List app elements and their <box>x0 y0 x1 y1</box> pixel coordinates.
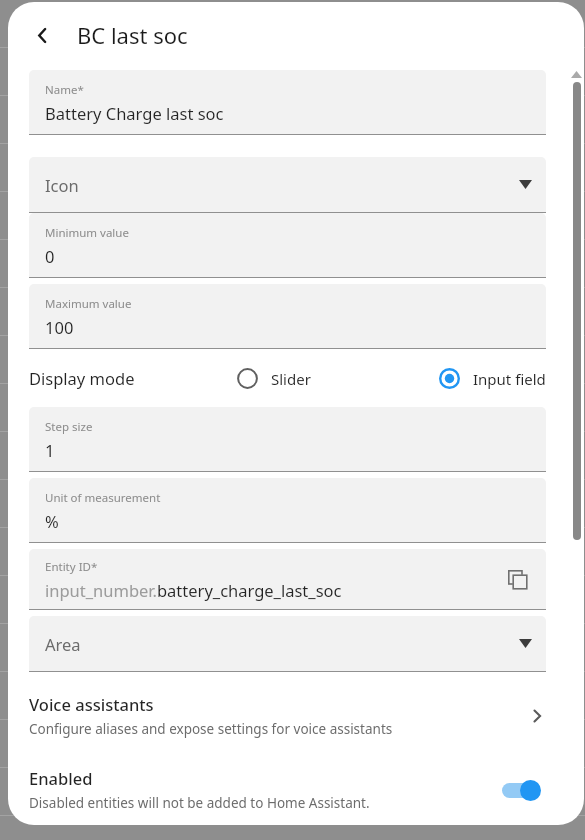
staticText: 0 <box>45 245 55 267</box>
button[interactable]: Back <box>20 13 64 57</box>
staticText: Name* <box>45 82 84 98</box>
button[interactable]: Maximum value <box>29 284 546 348</box>
staticText: Slider <box>271 369 311 389</box>
staticText: Step size <box>45 419 93 435</box>
staticText: Entity ID* <box>45 559 98 575</box>
staticText: 1 <box>45 439 55 461</box>
staticText: Configure aliases and expose settings fo… <box>29 720 393 738</box>
staticText: Battery Charge last soc <box>45 102 224 124</box>
staticText: Input field <box>473 369 546 389</box>
staticText: input_number.battery_charge_last_soc <box>45 579 342 601</box>
button[interactable]: Slider <box>237 368 311 389</box>
staticText: BC last soc <box>77 20 188 50</box>
staticText: Unit of measurement <box>45 490 161 506</box>
staticText: Icon <box>45 174 79 196</box>
staticText: Maximum value <box>45 296 132 312</box>
button[interactable]: Input field <box>439 368 546 389</box>
button[interactable]: Icon <box>29 157 546 212</box>
button[interactable]: Entity ID* <box>29 549 546 609</box>
button[interactable]: Copy entity ID <box>500 562 536 598</box>
button[interactable]: Name* <box>29 70 546 134</box>
staticText: Minimum value <box>45 225 129 241</box>
button[interactable]: Area <box>29 616 546 671</box>
button[interactable]: Enabled <box>29 763 546 816</box>
staticText: % <box>45 510 59 532</box>
staticText: Display mode <box>29 367 135 389</box>
staticText: Voice assistants <box>29 693 154 715</box>
button[interactable]: Unit of measurement <box>29 478 546 542</box>
staticText: 100 <box>45 316 74 338</box>
button[interactable]: Step size <box>29 407 546 471</box>
staticText: Disabled entities will not be added to H… <box>29 794 370 812</box>
button[interactable]: Minimum value <box>29 213 546 277</box>
staticText: Area <box>45 633 81 655</box>
staticText: Enabled <box>29 767 93 789</box>
button[interactable]: Voice assistants <box>29 687 546 744</box>
